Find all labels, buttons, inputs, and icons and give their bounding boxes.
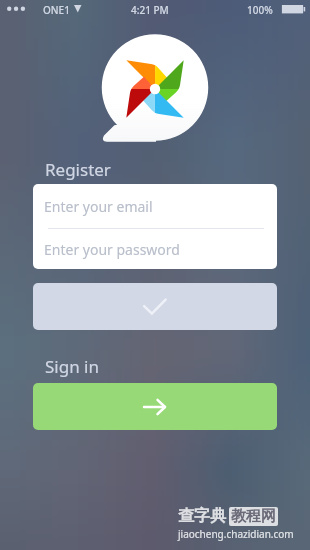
button[interactable]: Enter your password	[33, 229, 277, 269]
staticText: ONE1	[43, 3, 70, 17]
staticText: Sign in	[45, 355, 99, 378]
staticText: Enter your email	[44, 197, 153, 216]
staticText: Enter your password	[44, 240, 180, 259]
staticText: Register	[45, 158, 111, 181]
staticText: 100%	[247, 3, 273, 17]
staticText: jiaocheng.chazidian.com	[178, 527, 294, 541]
staticText: 教程网	[231, 507, 276, 526]
button[interactable]: Enter your email	[33, 184, 277, 228]
button[interactable]: Sign in	[33, 383, 277, 430]
button[interactable]: Confirm registration	[33, 283, 277, 330]
staticText: 4:21 PM	[131, 3, 169, 17]
staticText: 查字典	[178, 506, 226, 526]
